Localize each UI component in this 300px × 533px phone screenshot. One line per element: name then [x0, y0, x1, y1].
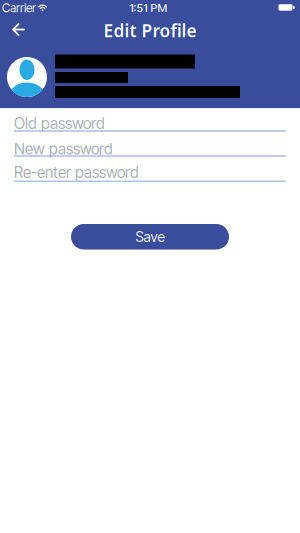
- staticText: 1:51 PM: [129, 1, 167, 15]
- staticText: Re-enter password: [14, 163, 139, 182]
- staticText: Edit Profile: [103, 19, 196, 42]
- staticText: Save: [135, 229, 164, 245]
- staticText: Carrier: [2, 1, 36, 15]
- staticText: New password: [14, 140, 113, 158]
- staticText: Old password: [14, 114, 105, 133]
